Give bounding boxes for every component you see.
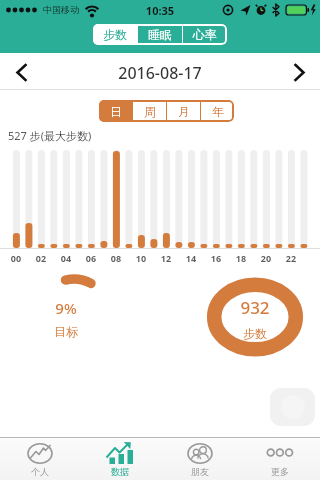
staticText: 04 (57, 252, 75, 264)
staticText: 932 (215, 296, 295, 319)
staticText: 18 (232, 252, 250, 264)
button[interactable]: 步数 (93, 24, 137, 45)
button[interactable]: 年 (201, 100, 234, 122)
button[interactable]: 心率 (183, 24, 227, 45)
staticText: 朋友 (168, 466, 232, 477)
staticText: 中国移动 (39, 4, 83, 15)
staticText: 10:35 (140, 3, 180, 18)
staticText: 心率 (193, 27, 217, 42)
staticText: 步数 (103, 27, 127, 42)
staticText: 20 (257, 252, 275, 264)
staticText: 个人 (8, 466, 72, 477)
button[interactable]: 更多 (240, 437, 320, 480)
staticText: 10 (132, 252, 150, 264)
button[interactable]: 睡眠 (138, 24, 182, 45)
staticText: 周 (144, 104, 156, 119)
staticText: 月 (178, 104, 190, 119)
staticText: 日 (110, 104, 122, 119)
staticText: 527 步(最大步数) (8, 128, 168, 143)
button[interactable] (270, 388, 315, 426)
staticText: 数据 (88, 466, 152, 477)
staticText: 16 (207, 252, 225, 264)
staticText: 12 (157, 252, 175, 264)
button[interactable] (6, 57, 36, 87)
button[interactable]: 数据 (80, 437, 160, 480)
button[interactable]: 月 (167, 100, 200, 122)
staticText: 02 (32, 252, 50, 264)
staticText: 22 (282, 252, 300, 264)
staticText: 睡眠 (148, 27, 172, 42)
staticText: 06 (82, 252, 100, 264)
staticText: 08 (107, 252, 125, 264)
staticText: 9% (36, 298, 96, 318)
staticText: 步数 (215, 326, 295, 341)
button[interactable]: 日 (99, 100, 132, 122)
staticText: 00 (7, 252, 25, 264)
staticText: 年 (212, 104, 224, 119)
button[interactable]: 个人 (0, 437, 80, 480)
staticText: 2016-08-17 (100, 62, 220, 84)
staticText: 目标 (36, 324, 96, 339)
button[interactable] (284, 57, 314, 87)
button[interactable]: 朋友 (160, 437, 240, 480)
staticText: 更多 (248, 466, 312, 477)
button[interactable]: 周 (133, 100, 166, 122)
staticText: 14 (182, 252, 200, 264)
